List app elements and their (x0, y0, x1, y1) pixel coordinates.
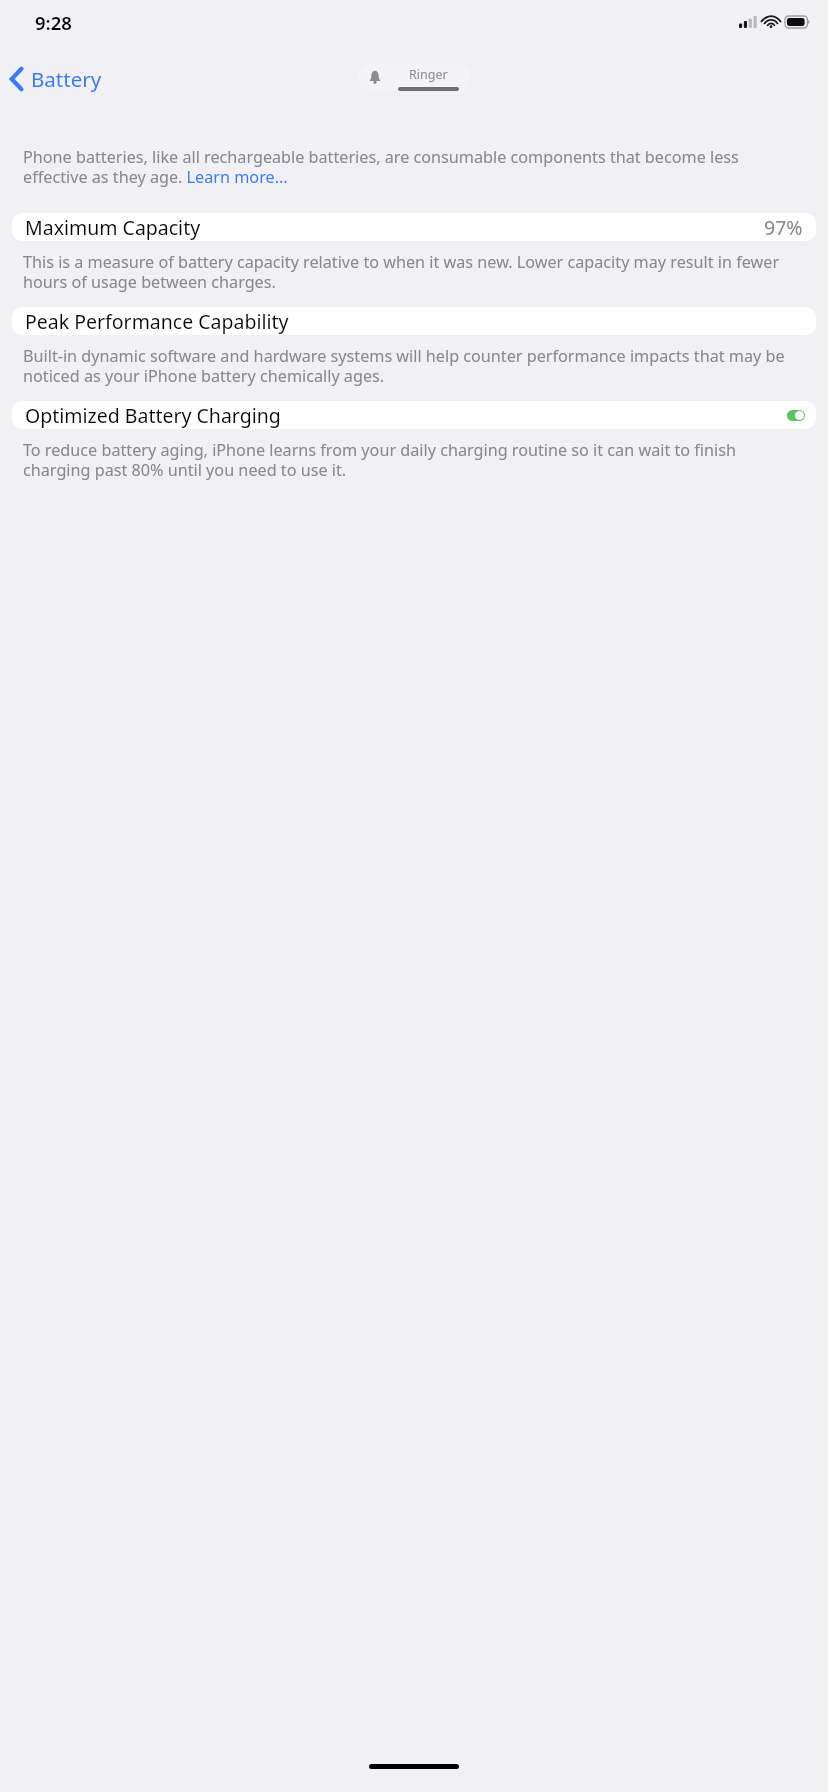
staticText: Ringer (409, 66, 448, 83)
staticText: Maximum Capacity (25, 214, 201, 241)
button[interactable]: Optimized Battery Charging (12, 401, 816, 429)
staticText: This is a measure of battery capacity re… (23, 251, 805, 293)
staticText: 9:28 (35, 10, 72, 35)
button[interactable]: Optimized Battery Charging toggle, on (787, 410, 805, 421)
staticText: Battery (31, 65, 102, 93)
button[interactable]: Battery (7, 61, 105, 97)
staticText: Phone batteries, like all rechargeable b… (23, 146, 805, 188)
staticText: Built-in dynamic software and hardware s… (23, 345, 805, 387)
staticText: 97% (764, 214, 803, 241)
button[interactable]: Peak Performance Capability (12, 307, 816, 335)
button[interactable]: Maximum Capacity (12, 213, 816, 241)
staticText: Peak Performance Capability (25, 308, 289, 335)
staticText: Optimized Battery Charging (25, 402, 281, 429)
staticText: To reduce battery aging, iPhone learns f… (23, 439, 805, 481)
